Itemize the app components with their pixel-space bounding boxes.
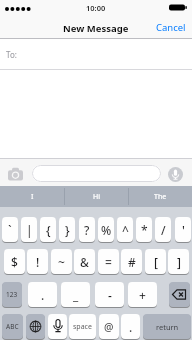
button[interactable]: $: [4, 249, 25, 274]
button[interactable]: ~: [51, 249, 72, 274]
button[interactable]: The: [128, 186, 192, 207]
staticText: .: [129, 319, 133, 335]
button[interactable]: &: [74, 249, 95, 274]
staticText: The: [154, 192, 167, 202]
staticText: ': [182, 222, 185, 238]
staticText: Cancel: [156, 21, 186, 34]
staticText: To:: [6, 49, 17, 60]
staticText: Hi: [93, 192, 100, 202]
button[interactable]: [32, 165, 161, 182]
button[interactable]: ': [175, 217, 191, 242]
staticText: -: [108, 287, 112, 303]
button[interactable]: {: [40, 217, 56, 242]
button[interactable]: return: [143, 314, 191, 339]
button[interactable]: #: [121, 249, 142, 274]
button[interactable]: +: [128, 282, 157, 307]
button[interactable]: [169, 282, 190, 307]
button[interactable]: .: [28, 282, 57, 307]
staticText: {: [46, 222, 51, 238]
staticText: ?: [84, 222, 90, 238]
button[interactable]: [26, 314, 45, 339]
button[interactable]: =: [98, 249, 119, 274]
button[interactable]: 123: [2, 282, 22, 307]
button[interactable]: ]: [168, 249, 189, 274]
button[interactable]: Cancel: [154, 19, 188, 36]
button[interactable]: I: [0, 186, 64, 207]
staticText: |: [26, 222, 33, 238]
staticText: *: [141, 222, 148, 238]
staticText: _: [73, 287, 79, 303]
button[interactable]: Hi: [64, 186, 128, 207]
staticText: ]: [177, 254, 181, 270]
button[interactable]: }: [59, 217, 75, 242]
staticText: space: [73, 322, 92, 332]
staticText: %: [101, 222, 112, 238]
staticText: ABC: [6, 322, 19, 331]
staticText: `: [8, 222, 12, 238]
staticText: ^: [122, 222, 129, 238]
staticText: +: [139, 287, 146, 303]
button[interactable]: -: [95, 282, 124, 307]
staticText: .: [41, 287, 45, 303]
button[interactable]: @: [99, 314, 119, 339]
staticText: }: [65, 222, 70, 238]
staticText: #: [128, 254, 136, 270]
staticText: $: [11, 254, 18, 270]
button[interactable]: *: [136, 217, 152, 242]
staticText: [: [154, 254, 158, 270]
staticText: I: [31, 192, 34, 202]
button[interactable]: To:: [0, 39, 192, 69]
staticText: 10:00: [86, 3, 106, 13]
staticText: 123: [6, 290, 18, 299]
button[interactable]: _: [61, 282, 90, 307]
button[interactable]: [: [145, 249, 166, 274]
staticText: ~: [58, 254, 65, 270]
staticText: &: [80, 254, 89, 270]
button[interactable]: [0, 158, 28, 186]
button[interactable]: space: [69, 314, 96, 339]
button[interactable]: ^: [117, 217, 133, 242]
button[interactable]: [168, 167, 183, 182]
button[interactable]: /: [155, 217, 171, 242]
staticText: New Message: [63, 22, 129, 35]
button[interactable]: !: [27, 249, 48, 274]
button[interactable]: %: [98, 217, 114, 242]
button[interactable]: `: [2, 217, 18, 242]
button[interactable]: .: [121, 314, 140, 339]
staticText: =: [105, 254, 112, 270]
staticText: return: [156, 322, 179, 332]
button[interactable]: ABC: [2, 314, 23, 339]
staticText: !: [36, 254, 40, 270]
button[interactable]: [48, 314, 67, 339]
button[interactable]: ?: [79, 217, 95, 242]
staticText: /: [161, 222, 166, 238]
staticText: @: [104, 320, 114, 334]
button[interactable]: |: [21, 217, 37, 242]
